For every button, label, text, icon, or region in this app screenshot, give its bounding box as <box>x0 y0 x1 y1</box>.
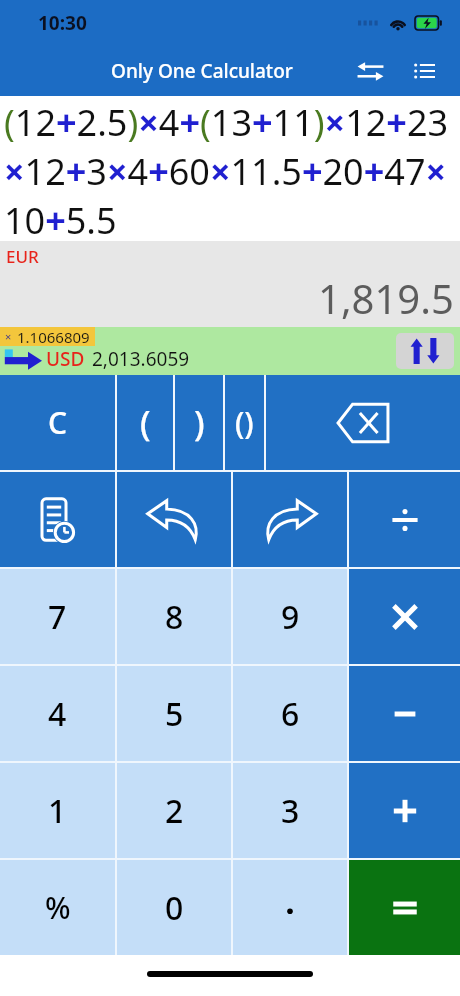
staticText: 3 <box>281 789 300 833</box>
button[interactable]: 1 <box>0 763 115 858</box>
button[interactable]: Menu <box>402 49 446 93</box>
staticText: 0 <box>165 886 184 930</box>
staticText: ( <box>140 400 151 446</box>
staticText: % <box>45 887 71 928</box>
button[interactable]: × <box>0 327 95 346</box>
button[interactable]: C <box>0 375 115 470</box>
button[interactable]: 0 <box>117 860 231 955</box>
button[interactable]: % <box>0 860 115 955</box>
button[interactable]: 7 <box>0 569 115 664</box>
button[interactable]: 6 <box>233 666 347 761</box>
button[interactable] <box>0 327 460 375</box>
staticText: 6 <box>281 692 300 736</box>
button[interactable]: Backspace <box>266 375 460 470</box>
button[interactable]: ( <box>117 375 173 470</box>
staticText: 1 <box>48 789 67 833</box>
button[interactable]: Decimal point <box>233 860 347 955</box>
staticText: 8 <box>165 595 184 639</box>
staticText: 1.1066809 <box>17 327 90 346</box>
button[interactable]: () <box>225 375 264 470</box>
button[interactable]: Divide <box>349 472 460 567</box>
button[interactable]: Undo <box>117 472 231 567</box>
staticText: Only One Calculator <box>111 58 293 84</box>
button[interactable]: Swap conversion direction <box>396 333 454 369</box>
button[interactable]: 9 <box>233 569 347 664</box>
staticText: ) <box>194 400 205 446</box>
button[interactable]: Plus <box>349 763 460 858</box>
button[interactable]: History <box>0 472 115 567</box>
button[interactable]: EUR <box>0 241 460 327</box>
button[interactable]: 4 <box>0 666 115 761</box>
button[interactable]: 5 <box>117 666 231 761</box>
staticText: 4 <box>48 692 67 736</box>
button[interactable]: 8 <box>117 569 231 664</box>
button[interactable]: Equals <box>349 860 460 955</box>
staticText: 10:30 <box>38 10 87 36</box>
staticText: × <box>5 329 12 344</box>
button[interactable]: 3 <box>233 763 347 858</box>
staticText: () <box>235 402 254 443</box>
staticText: 7 <box>48 595 67 639</box>
staticText: 5 <box>165 692 184 736</box>
button[interactable]: ) <box>175 375 223 470</box>
button[interactable]: 2 <box>117 763 231 858</box>
staticText: 2,013.6059 <box>92 346 190 372</box>
staticText: 9 <box>281 595 300 639</box>
button[interactable]: Swap currencies <box>348 49 392 93</box>
button[interactable]: Redo <box>233 472 347 567</box>
button[interactable]: Minus <box>349 666 460 761</box>
staticText: 2 <box>165 789 184 833</box>
staticText: C <box>48 402 68 443</box>
staticText: 1,819.5 <box>318 271 454 325</box>
staticText: (12+2.5)×4+(13+11)×12+23×12+3×4+60×11.5+… <box>4 98 460 241</box>
staticText: USD <box>46 346 85 372</box>
staticText: EUR <box>6 245 39 268</box>
button[interactable]: Multiply <box>349 569 460 664</box>
